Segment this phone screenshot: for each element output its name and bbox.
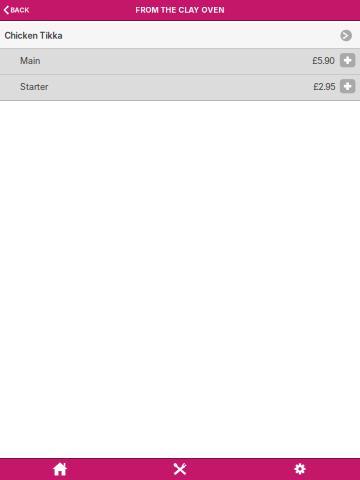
button[interactable]: BACK	[0, 0, 52, 20]
button[interactable]: Settings	[240, 459, 360, 480]
staticText: Main	[20, 55, 40, 66]
button[interactable]: Chicken Tikka	[0, 21, 360, 48]
staticText: Starter	[20, 81, 48, 92]
staticText: £5.90	[312, 55, 335, 66]
staticText: £2.95	[313, 81, 335, 92]
button[interactable]: Home	[0, 459, 120, 480]
staticText: Chicken Tikka	[4, 30, 62, 41]
button[interactable]: Menu	[120, 459, 240, 480]
button[interactable]: Main	[0, 49, 360, 74]
staticText: FROM THE CLAY OVEN	[135, 5, 224, 15]
button[interactable]: Starter	[0, 75, 360, 100]
staticText: BACK	[11, 6, 30, 14]
